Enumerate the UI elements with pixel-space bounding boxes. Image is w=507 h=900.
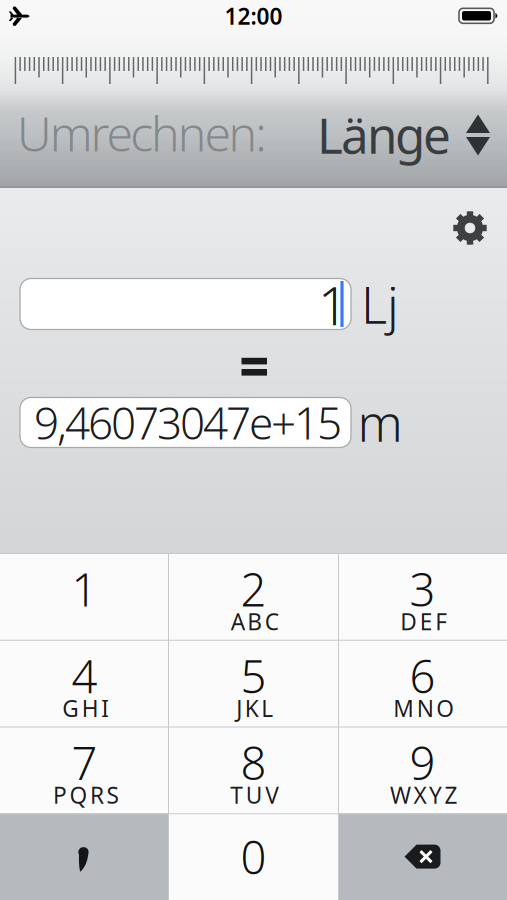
staticText: 5 (240, 646, 266, 706)
staticText: 1 (71, 559, 97, 619)
staticText: 3 (409, 559, 435, 619)
staticText: 1 (318, 269, 348, 340)
staticText: m (357, 388, 402, 456)
button[interactable]: Eingabewert (20, 278, 351, 329)
staticText: 0 (240, 826, 266, 887)
button[interactable]: Komma (0, 813, 169, 900)
staticText: DEF (400, 606, 447, 636)
button[interactable]: 1 (0, 553, 169, 640)
button[interactable]: 6 (338, 640, 507, 727)
button[interactable]: 8 (169, 726, 338, 813)
button[interactable]: 2 (169, 553, 338, 640)
button[interactable]: 4 (0, 640, 169, 727)
button[interactable]: 3 (338, 553, 507, 640)
button[interactable]: Einstellungen (444, 202, 496, 254)
staticText: 2 (240, 559, 266, 619)
staticText: ABC (231, 606, 279, 636)
staticText: 8 (240, 732, 266, 793)
staticText: 7 (71, 732, 97, 793)
staticText: JKL (236, 693, 273, 723)
staticText: PQRS (53, 780, 118, 810)
staticText: WXYZ (390, 780, 457, 810)
staticText: 12:00 (224, 1, 282, 31)
button[interactable]: 0 (169, 813, 338, 900)
staticText: Lj (361, 270, 399, 338)
staticText: 9,46073047e+15 (34, 393, 342, 452)
staticText: MNO (393, 693, 454, 723)
button[interactable]: Länge (318, 99, 490, 169)
button[interactable]: Löschen (338, 813, 507, 900)
button[interactable]: 5 (169, 640, 338, 727)
staticText: TUV (230, 780, 279, 810)
staticText: GHI (62, 693, 109, 723)
button[interactable]: 9 (338, 726, 507, 813)
staticText: 4 (71, 646, 97, 706)
button[interactable]: Ergebnis (20, 397, 351, 447)
staticText: 6 (409, 646, 435, 706)
staticText: 9 (409, 732, 435, 793)
staticText: Länge (317, 102, 451, 167)
button[interactable]: 7 (0, 726, 169, 813)
staticText: Umrechnen: (17, 101, 267, 165)
